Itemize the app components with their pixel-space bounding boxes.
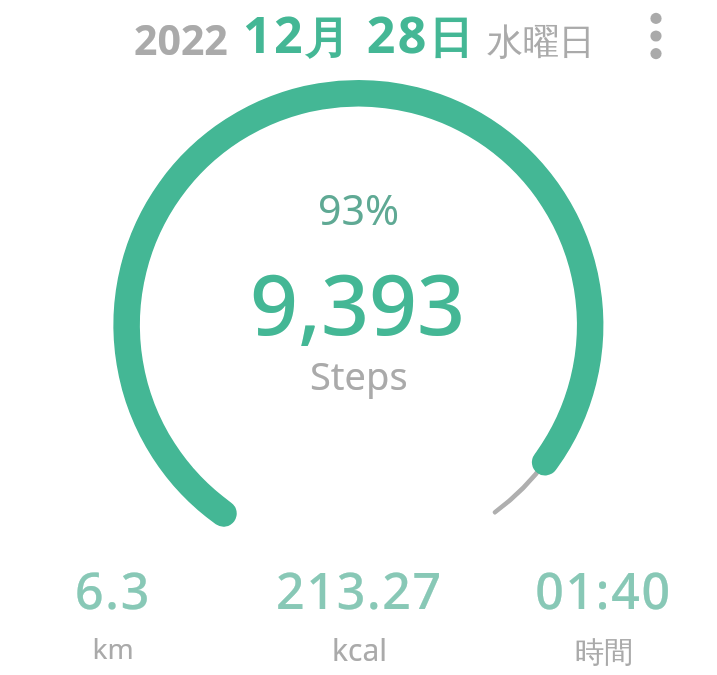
button[interactable]: 6.3 [23,556,203,675]
button[interactable]: 01:40 [513,556,693,675]
staticText: 9,393 [250,245,466,359]
staticText: 93% [318,181,399,237]
staticText: Steps [310,349,408,401]
staticText: kcal [332,629,387,670]
staticText: km [92,629,134,667]
staticText: 2022 [134,11,228,67]
button[interactable]: More options [628,0,684,72]
staticText: 213.27 [276,556,443,624]
staticText: 6.3 [75,556,151,624]
staticText: 水曜日 [487,19,595,64]
staticText: 時間 [575,634,633,671]
staticText: 01:40 [535,556,672,624]
staticText: 12月 28日 [243,0,476,68]
button[interactable]: 213.27 [269,556,449,675]
